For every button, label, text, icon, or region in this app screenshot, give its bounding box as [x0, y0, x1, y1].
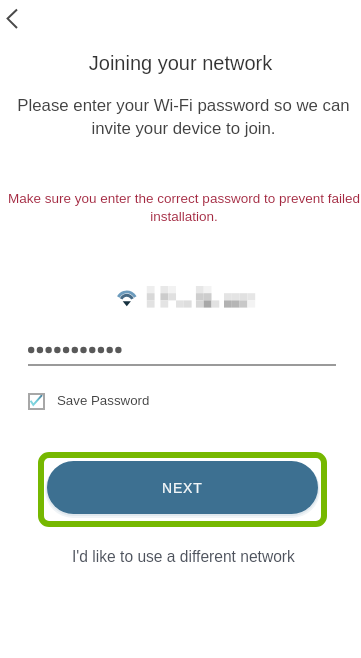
- staticText: Make sure you enter the correct password…: [7, 191, 361, 224]
- button[interactable]: Save Password: [24, 389, 154, 413]
- staticText: NEXT: [162, 480, 203, 496]
- button[interactable]: Back: [0, 3, 31, 34]
- staticText: Joining your network: [0, 52, 361, 74]
- button[interactable]: I'd like to use a different network: [62, 543, 304, 569]
- staticText: Save Password: [57, 393, 150, 408]
- staticText: Please enter your Wi-Fi password so we c…: [16, 96, 351, 138]
- staticText: I'd like to use a different network: [72, 548, 295, 565]
- button[interactable]: NEXT: [47, 461, 318, 514]
